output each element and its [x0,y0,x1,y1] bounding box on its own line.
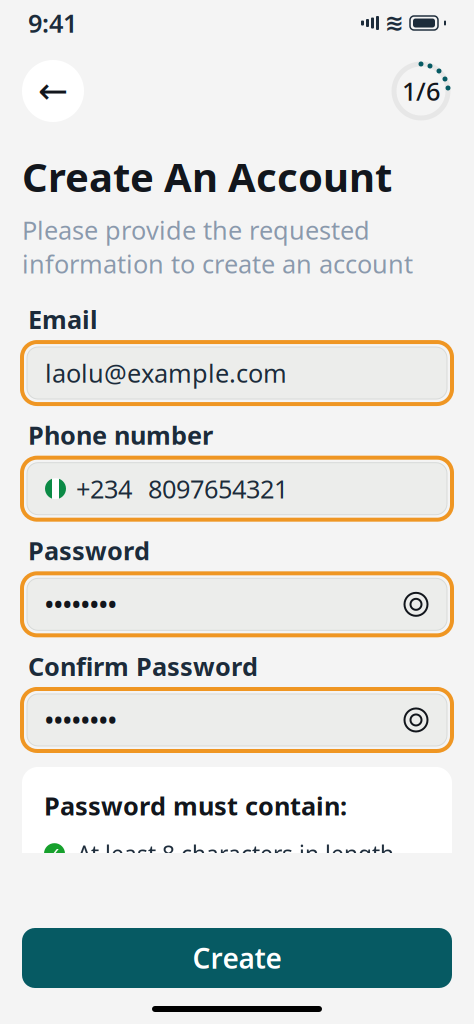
staticText: Confirm Password [28,649,258,683]
staticText: Phone number [28,418,213,452]
staticText: ← [38,71,68,111]
staticText: Upper case letters (A-Z) [77,931,326,961]
staticText: •••••••• [45,589,117,619]
button[interactable]: Step 1 of 6 [390,60,452,122]
button[interactable]: Create [22,928,452,988]
button[interactable]: •••••••• [22,573,452,635]
button[interactable]: +234 [22,458,452,520]
button[interactable]: Back [22,60,84,122]
staticText: +234 [76,472,132,505]
staticText: laolu@example.com [45,356,287,390]
staticText: 8097654321 [148,472,288,505]
staticText: ≋ [385,10,404,36]
staticText: Email [28,302,98,336]
button[interactable]: laolu@example.com [22,342,452,404]
staticText: 9:41 [28,6,77,40]
staticText: At least 8 characters in length [77,839,394,869]
staticText: Password must contain: [44,789,347,823]
staticText: ✓ [47,844,62,863]
staticText: Create An Account [22,150,392,203]
button[interactable]: •••••••• [22,689,452,751]
staticText: Please provide the requested information… [22,213,413,280]
staticText: •••••••• [45,705,117,735]
staticText: Password [28,534,150,567]
staticText: 1/6 [402,74,440,108]
staticText: Create [192,939,281,977]
